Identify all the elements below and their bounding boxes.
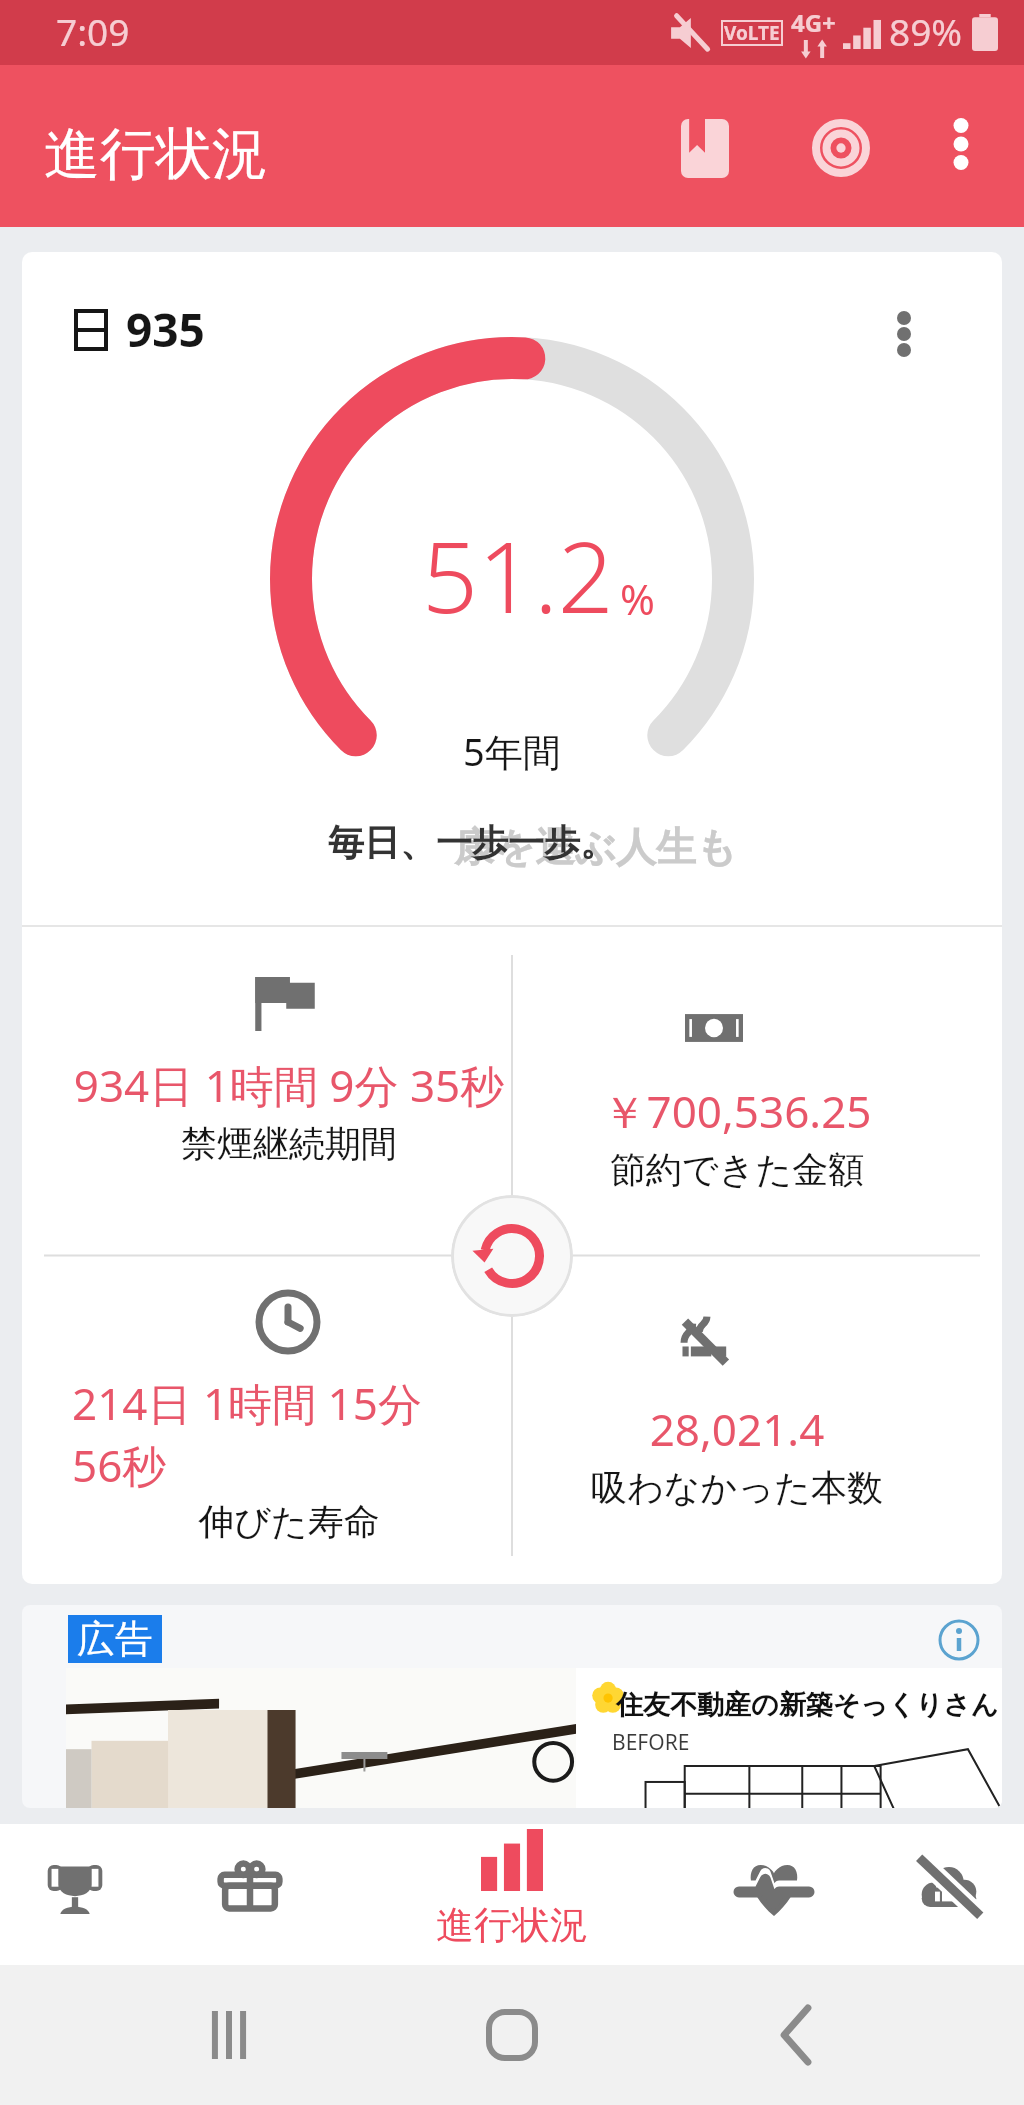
button[interactable]: Achievements bbox=[13, 1824, 137, 1948]
button[interactable]: 進行状況 bbox=[418, 1816, 606, 1961]
button[interactable]: Card options bbox=[862, 292, 946, 376]
button[interactable]: Rewards bbox=[188, 1824, 312, 1948]
button[interactable]: 934日 1時間 9分 35秒 bbox=[22, 927, 512, 1255]
staticText: 毎日、一歩一歩。 bbox=[328, 820, 616, 865]
button[interactable]: Home bbox=[457, 1980, 567, 2090]
staticText: % bbox=[620, 570, 655, 627]
staticText: VoLTE bbox=[724, 20, 780, 46]
button[interactable]: Recents bbox=[174, 1980, 284, 2090]
button[interactable]: 214日 1時間 15分 56秒 bbox=[22, 1255, 512, 1584]
staticText: 28,021.4 bbox=[492, 1399, 982, 1459]
button[interactable]: Reset counters bbox=[451, 1195, 573, 1317]
staticText: 5年間 bbox=[463, 725, 561, 777]
button[interactable]: Diary bbox=[649, 92, 761, 204]
button[interactable]: Back bbox=[741, 1980, 851, 2090]
staticText: 進行状況 bbox=[44, 119, 268, 190]
staticText: 89% bbox=[889, 6, 963, 56]
button[interactable]: ￥700,536.25 bbox=[512, 927, 1002, 1255]
staticText: 節約できた金額 bbox=[492, 1147, 982, 1192]
staticText: 禁煙継続期間 bbox=[44, 1121, 534, 1166]
button[interactable]: Cravings bbox=[887, 1824, 1011, 1948]
staticText: ￥700,536.25 bbox=[492, 1081, 982, 1141]
staticText: 進行状況 bbox=[436, 1901, 588, 1949]
staticText: 7:09 bbox=[56, 6, 130, 56]
staticText: 934日 1時間 9分 35秒 bbox=[44, 1055, 534, 1115]
button[interactable]: More options bbox=[913, 96, 1009, 192]
staticText: 214日 1時間 15分 56秒 bbox=[72, 1373, 440, 1493]
staticText: 4G+ bbox=[791, 6, 836, 39]
staticText: 広告 bbox=[77, 1615, 153, 1663]
button[interactable]: Health bbox=[712, 1824, 836, 1948]
button[interactable]: 28,021.4 bbox=[512, 1255, 1002, 1584]
staticText: 康を選ぶ人生も bbox=[454, 822, 737, 872]
staticText: 住友不動産の新築そっくりさん bbox=[616, 1688, 999, 1722]
staticText: BEFORE bbox=[612, 1728, 690, 1757]
button[interactable]: Goal bbox=[785, 92, 897, 204]
staticText: 935 bbox=[126, 298, 205, 361]
staticText: 吸わなかった本数 bbox=[492, 1465, 982, 1510]
button[interactable]: 広告 bbox=[22, 1605, 1002, 1808]
staticText: 51.2 bbox=[422, 508, 614, 641]
staticText: 伸びた寿命 bbox=[44, 1499, 534, 1544]
